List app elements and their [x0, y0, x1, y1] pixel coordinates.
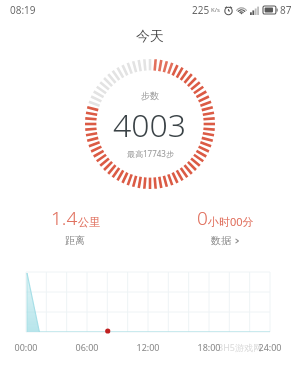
staticText: 08:19	[10, 3, 36, 17]
button[interactable]: 步数	[84, 58, 216, 190]
staticText: 1.4	[51, 205, 78, 231]
button[interactable]	[0, 264, 300, 342]
other: More data	[234, 238, 240, 244]
staticText: 06:00	[75, 341, 99, 353]
staticText: 公里	[78, 215, 100, 229]
staticText: 225	[192, 3, 210, 17]
button[interactable]: 0	[150, 205, 300, 247]
staticText: 最高17743步	[127, 148, 174, 159]
staticText: 00:00	[14, 341, 38, 353]
staticText: 24:00	[258, 341, 282, 353]
staticText: 距离	[65, 234, 85, 247]
staticText: 12:00	[136, 341, 160, 353]
staticText: 18:00	[197, 341, 221, 353]
staticText: 4003	[113, 103, 187, 147]
staticText: 步数	[141, 90, 159, 101]
staticText: K/s	[211, 6, 220, 14]
staticText: 3H5游戏网	[218, 341, 262, 353]
staticText: 0	[197, 205, 208, 231]
button[interactable]: 1.4	[0, 205, 150, 247]
staticText: 数据	[211, 234, 231, 247]
staticText: 今天	[136, 28, 164, 46]
staticText: 87	[280, 3, 292, 17]
staticText: 小时00分	[208, 214, 254, 229]
